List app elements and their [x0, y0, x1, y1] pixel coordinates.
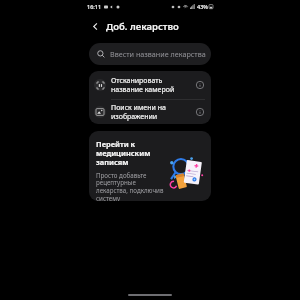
staticText: 16:11 [87, 3, 102, 10]
button[interactable]: Отсканировать название камерой [89, 71, 211, 99]
staticText: 43% [197, 3, 208, 10]
button[interactable]: Back [86, 17, 104, 35]
button[interactable]: Info [194, 79, 206, 91]
staticText: Перейти к медицинским записям [96, 139, 163, 167]
staticText: Отсканировать название камерой [111, 76, 191, 94]
button[interactable]: Поиск имени на изображении [89, 100, 211, 124]
button[interactable]: Перейти к медицинским записям [89, 131, 211, 201]
staticText: Ввести название лекарства [110, 49, 206, 59]
button[interactable]: Info [194, 106, 206, 118]
button[interactable]: Ввести название лекарства [89, 43, 211, 65]
staticText: Доб. лекарство [106, 20, 179, 33]
staticText: Просто добавьте рецептурные лекарства, п… [96, 171, 167, 201]
staticText: Поиск имени на изображении [111, 103, 191, 121]
